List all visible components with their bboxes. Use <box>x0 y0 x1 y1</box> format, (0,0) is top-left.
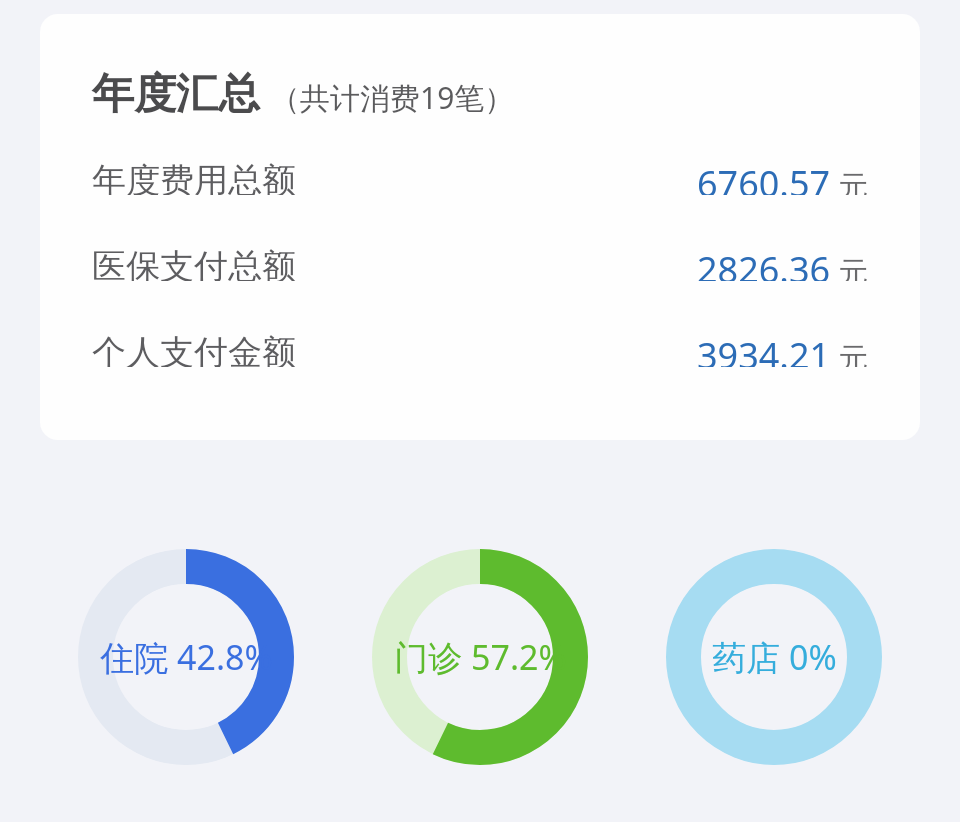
staticText: 2826.36 元 <box>696 245 868 281</box>
staticText: 医保支付总额 <box>92 245 296 281</box>
button[interactable]: 个人支付金额 <box>40 331 920 367</box>
staticText: 3934.21 元 <box>696 331 868 367</box>
button[interactable]: 门诊 57.2% <box>372 549 588 765</box>
button[interactable]: 药店 0% <box>666 549 882 765</box>
staticText: 住院 42.8% <box>100 634 273 680</box>
staticText: （共计消费19笔） <box>270 77 515 118</box>
button[interactable]: 住院 42.8% <box>78 549 294 765</box>
staticText: 个人支付金额 <box>92 331 296 367</box>
button[interactable]: 年度汇总 <box>40 14 920 440</box>
button[interactable]: 年度费用总额 <box>40 159 920 195</box>
button[interactable]: 医保支付总额 <box>40 245 920 281</box>
staticText: 6760.57 元 <box>696 159 868 195</box>
staticText: 药店 0% <box>712 634 837 680</box>
staticText: 年度费用总额 <box>92 159 296 195</box>
staticText: 门诊 57.2% <box>394 634 567 680</box>
staticText: 年度汇总 <box>92 68 260 121</box>
